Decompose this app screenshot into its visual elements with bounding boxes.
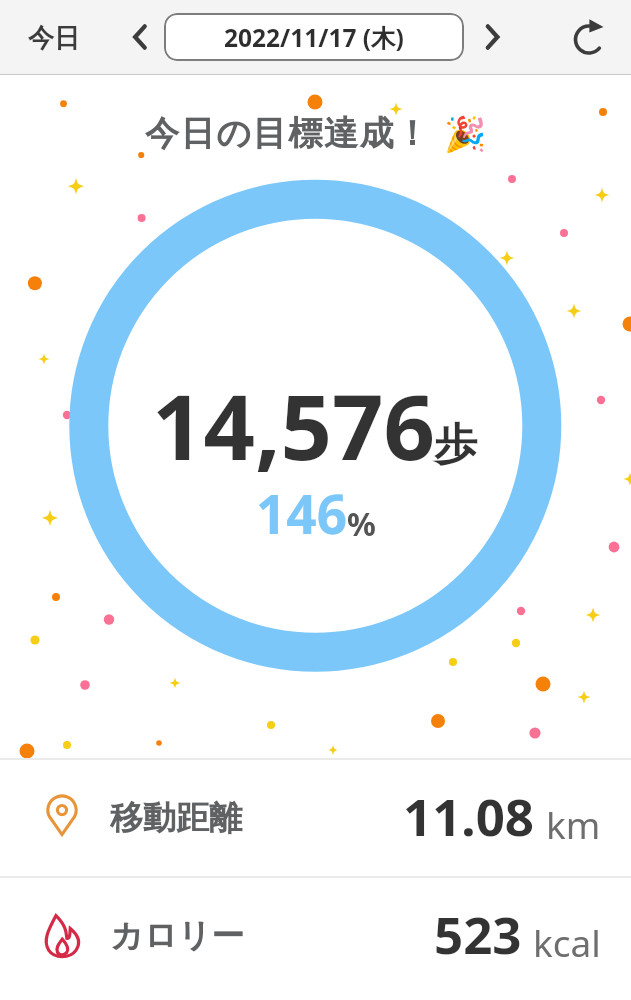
- button[interactable]: Refresh: [561, 10, 617, 66]
- staticText: kcal: [533, 917, 601, 967]
- staticText: 今日: [28, 22, 80, 55]
- staticText: 2022/11/17 (木): [224, 21, 404, 54]
- button[interactable]: Previous day: [113, 11, 165, 63]
- staticText: カロリー: [110, 915, 245, 957]
- staticText: 移動距離: [110, 797, 242, 839]
- staticText: 🎉: [444, 114, 487, 154]
- staticText: 今日の目標達成！: [145, 112, 431, 155]
- button[interactable]: 移動距離: [0, 760, 631, 876]
- staticText: %: [347, 502, 376, 546]
- staticText: km: [546, 799, 601, 849]
- staticText: 146: [256, 477, 347, 549]
- staticText: 歩: [434, 418, 477, 472]
- button[interactable]: Next day: [467, 11, 519, 63]
- button[interactable]: カロリー: [0, 878, 631, 994]
- button[interactable]: 2022/11/17 (木): [164, 13, 464, 61]
- button[interactable]: 今日: [16, 13, 92, 64]
- staticText: 14,576: [152, 364, 436, 487]
- staticText: 11.08: [403, 781, 535, 850]
- staticText: 523: [434, 899, 522, 968]
